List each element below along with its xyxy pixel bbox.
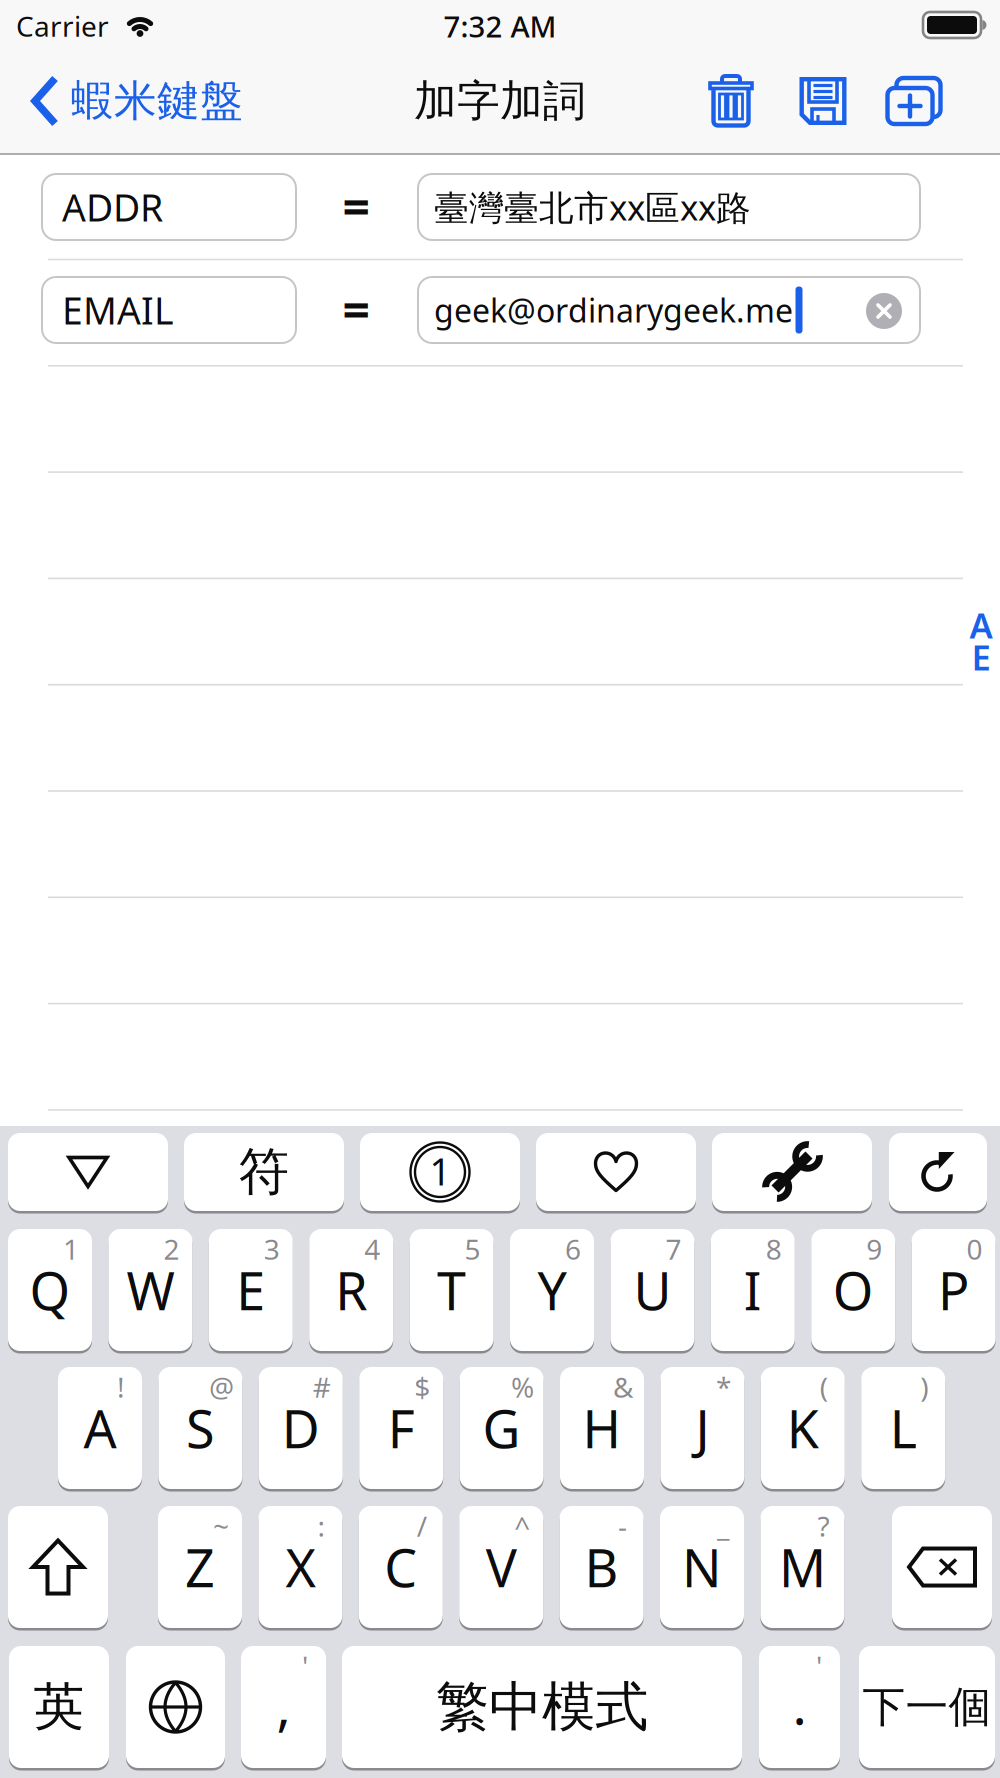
staticText: P (938, 1255, 969, 1325)
staticText: 7:32 AM (443, 6, 556, 45)
staticText: 5 (465, 1230, 481, 1268)
staticText: ! (117, 1368, 125, 1406)
button[interactable]: X (258, 1506, 342, 1628)
staticText: ( (820, 1368, 828, 1406)
staticText: * (716, 1368, 731, 1406)
staticText: 蝦米鍵盤 (71, 75, 243, 127)
staticText: 1 (429, 1146, 450, 1196)
staticText: Carrier (16, 7, 109, 45)
staticText: ~ (213, 1507, 229, 1545)
button[interactable]: Save (799, 77, 846, 125)
button[interactable]: EMAIL value field (418, 277, 920, 343)
button[interactable]: Circled numbers (360, 1133, 520, 1211)
button[interactable]: Collapse (8, 1133, 168, 1211)
button[interactable]: E (209, 1229, 293, 1351)
staticText: O (833, 1255, 874, 1325)
staticText: ADDR (62, 182, 163, 232)
staticText: X (285, 1532, 315, 1602)
staticText: B (585, 1532, 619, 1602)
button[interactable]: Z (158, 1506, 242, 1628)
staticText: - (618, 1507, 627, 1545)
staticText: , (276, 1670, 290, 1740)
staticText: . (792, 1669, 806, 1739)
button[interactable]: 符 (184, 1133, 344, 1211)
button[interactable]: Section index (967, 611, 995, 671)
staticText: : (317, 1507, 325, 1545)
staticText: A (969, 602, 992, 648)
button[interactable]: ADDR value field (418, 174, 920, 240)
button[interactable]: K (761, 1367, 845, 1489)
button[interactable]: EMAIL key field (42, 277, 296, 343)
button[interactable]: Add entry (887, 76, 940, 124)
button[interactable]: Favorites (536, 1133, 696, 1211)
staticText: ^ (514, 1507, 530, 1545)
button[interactable]: 英 (9, 1646, 109, 1768)
button[interactable]: P (912, 1229, 996, 1351)
staticText: E (971, 634, 990, 680)
button[interactable]: S (158, 1367, 242, 1489)
staticText: N (682, 1532, 722, 1602)
button[interactable]: Undo (889, 1133, 987, 1211)
staticText: ' (816, 1647, 822, 1685)
staticText: @ (209, 1368, 234, 1406)
staticText: K (787, 1393, 819, 1463)
staticText: 下一個 (862, 1681, 991, 1733)
button[interactable]: J (660, 1367, 744, 1489)
staticText: $ (414, 1368, 430, 1406)
button[interactable]: Delete (892, 1506, 992, 1628)
staticText: 8 (766, 1230, 782, 1268)
staticText: F (388, 1393, 415, 1463)
staticText: T (437, 1255, 466, 1325)
staticText: 符 (238, 1141, 289, 1203)
staticText: E (236, 1255, 265, 1325)
staticText: W (126, 1255, 174, 1325)
button[interactable]: , (241, 1646, 326, 1768)
button[interactable]: . (759, 1646, 840, 1768)
button[interactable]: H (560, 1367, 644, 1489)
button[interactable]: N (660, 1506, 744, 1628)
staticText: & (613, 1368, 633, 1406)
staticText: Y (537, 1255, 566, 1325)
button[interactable]: M (760, 1506, 844, 1628)
staticText: 2 (163, 1230, 179, 1268)
button[interactable]: L (861, 1367, 945, 1489)
button[interactable]: 繁中模式 (342, 1646, 742, 1768)
staticText: 繁中模式 (436, 1674, 648, 1740)
button[interactable]: W (108, 1229, 192, 1351)
staticText: L (890, 1393, 917, 1463)
button[interactable]: V (459, 1506, 543, 1628)
staticText: = (342, 174, 369, 238)
staticText: R (335, 1255, 367, 1325)
staticText: S (186, 1393, 215, 1463)
button[interactable]: Settings (712, 1133, 872, 1211)
staticText: = (342, 277, 369, 341)
staticText: 4 (364, 1230, 380, 1268)
button[interactable]: D (259, 1367, 343, 1489)
button[interactable]: T (410, 1229, 494, 1351)
staticText: / (417, 1507, 427, 1545)
button[interactable]: ADDR key field (42, 174, 296, 240)
button[interactable]: Y (510, 1229, 594, 1351)
button[interactable]: O (811, 1229, 895, 1351)
button[interactable]: Back (31, 74, 243, 127)
staticText: ) (920, 1368, 928, 1406)
button[interactable]: Shift (8, 1506, 108, 1628)
staticText: # (313, 1368, 331, 1406)
button[interactable]: Next keyboard (126, 1646, 225, 1768)
button[interactable]: Delete (708, 74, 754, 127)
button[interactable]: B (560, 1506, 644, 1628)
staticText: D (282, 1393, 320, 1463)
button[interactable]: U (610, 1229, 694, 1351)
button[interactable]: I (711, 1229, 795, 1351)
button[interactable]: Clear text (866, 293, 902, 329)
button[interactable]: Q (8, 1229, 92, 1351)
button[interactable]: G (460, 1367, 544, 1489)
staticText: 7 (665, 1230, 681, 1268)
button[interactable]: F (359, 1367, 443, 1489)
staticText: V (486, 1532, 517, 1602)
button[interactable]: C (359, 1506, 443, 1628)
button[interactable]: R (309, 1229, 393, 1351)
button[interactable]: 下一個 (859, 1646, 995, 1768)
button[interactable]: A (58, 1367, 142, 1489)
staticText: G (483, 1393, 521, 1463)
